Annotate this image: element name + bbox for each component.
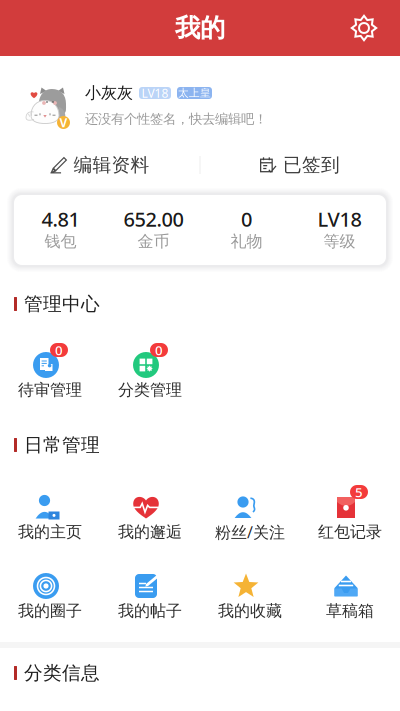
button[interactable]: 设置 [339, 3, 389, 53]
staticText: LV18 [317, 206, 361, 232]
staticText: 我的帖子 [118, 601, 182, 621]
staticText: 我的主页 [18, 522, 82, 542]
staticText: 5 [355, 483, 363, 501]
staticText: LV18 [141, 85, 168, 101]
staticText: 太上皇 [178, 86, 211, 99]
staticText: 编辑资料 [73, 153, 149, 176]
staticText: 日常管理 [24, 433, 100, 456]
staticText: 4.81 [41, 206, 79, 232]
staticText: 我的圈子 [18, 601, 82, 621]
button[interactable]: 我的收藏 [200, 564, 300, 622]
staticText: 0 [155, 341, 163, 359]
staticText: 草稿箱 [326, 601, 374, 621]
staticText: 0 [55, 341, 63, 359]
staticText: 我的收藏 [218, 601, 282, 621]
staticText: 652.00 [123, 206, 183, 232]
staticText: V [59, 114, 67, 130]
staticText: 我的 [175, 12, 225, 43]
staticText: 钱包 [44, 232, 76, 251]
button[interactable]: 我的邂逅 [100, 485, 200, 543]
staticText: 分类信息 [24, 661, 100, 684]
staticText: 金币 [137, 232, 169, 251]
button[interactable]: 草稿箱 [300, 564, 400, 622]
staticText: 待审管理 [18, 380, 82, 400]
button[interactable]: 我的圈子 [0, 564, 100, 622]
staticText: 0 [241, 206, 252, 232]
button[interactable]: 我的帖子 [100, 564, 200, 622]
staticText: 我的邂逅 [118, 522, 182, 542]
staticText: 等级 [323, 232, 355, 251]
staticText: 管理中心 [24, 292, 100, 315]
staticText: 分类管理 [118, 380, 182, 400]
staticText: 小灰灰 [85, 83, 133, 103]
staticText: 还没有个性签名，快去编辑吧！ [85, 111, 267, 127]
staticText: 已签到 [283, 153, 340, 176]
button[interactable]: 编辑资料 [0, 144, 200, 186]
button[interactable]: 我的主页 [0, 485, 100, 543]
button[interactable]: 0 [100, 343, 200, 401]
button[interactable]: 粉丝/关注 [200, 485, 300, 543]
button[interactable]: 已签到 [200, 144, 400, 186]
button[interactable]: 0 [0, 343, 100, 401]
staticText: 红包记录 [318, 522, 382, 542]
button[interactable]: 5 [300, 485, 400, 543]
staticText: 粉丝/关注 [215, 521, 285, 543]
staticText: 礼物 [230, 232, 262, 251]
